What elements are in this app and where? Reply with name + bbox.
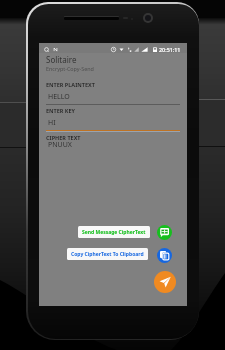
staticText: ENTER PLAINTEXT [46, 81, 95, 88]
staticText: PNUUX [48, 140, 72, 150]
staticText: Solitaire [46, 54, 77, 65]
button[interactable]: Send message [157, 225, 172, 240]
button[interactable]: Send [154, 271, 176, 293]
staticText: CIPHER TEXT [46, 134, 81, 141]
button[interactable]: Copy CipherText To Clipboard [67, 248, 148, 260]
staticText: Send Message CipherText [82, 229, 146, 236]
staticText: ENTER KEY [46, 107, 76, 114]
staticText: HELLO [48, 92, 70, 102]
staticText: HI [48, 118, 56, 128]
staticText: 20:51:11 [159, 46, 181, 53]
staticText: Encrypt-Copy-Send [46, 65, 94, 72]
button[interactable]: Send Message CipherText [78, 226, 150, 238]
button[interactable]: Copy to clipboard [157, 248, 172, 263]
staticText: Copy CipherText To Clipboard [71, 251, 144, 258]
